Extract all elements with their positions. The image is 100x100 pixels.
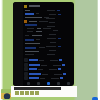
button[interactable]: [11, 86, 77, 97]
button[interactable]: [24, 76, 73, 80]
button[interactable]: Tab 1: [23, 80, 33, 86]
button[interactable]: Tab 5: [63, 80, 73, 86]
button[interactable]: Tab 2: [33, 80, 43, 86]
button[interactable]: [24, 72, 73, 76]
button[interactable]: Profile avatar: [1, 89, 11, 99]
button[interactable]: Tab 4: [53, 80, 63, 86]
button[interactable]: [24, 63, 73, 67]
button[interactable]: [24, 3, 64, 9]
button[interactable]: [24, 58, 73, 62]
button[interactable]: Action: [92, 97, 98, 100]
button[interactable]: Tab 3: [43, 80, 53, 86]
button[interactable]: [24, 67, 73, 71]
